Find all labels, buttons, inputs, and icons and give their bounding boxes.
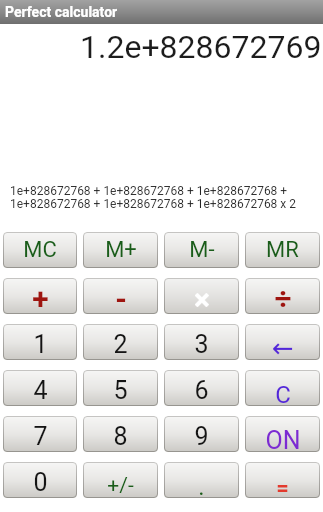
button[interactable]: 7	[3, 416, 77, 452]
button[interactable]: ÷	[245, 278, 320, 314]
button[interactable]: 0	[3, 462, 77, 498]
staticText: C	[275, 381, 291, 406]
button[interactable]: ×	[164, 278, 239, 314]
button[interactable]: +/-	[83, 462, 158, 498]
button[interactable]: ON	[245, 416, 320, 452]
button[interactable]: M+	[83, 232, 158, 268]
button[interactable]: 3	[164, 324, 239, 360]
staticText: -	[115, 281, 127, 314]
button[interactable]: =	[245, 462, 320, 498]
staticText: ←	[272, 333, 294, 360]
staticText: 8	[113, 422, 128, 451]
button[interactable]: M-	[164, 232, 239, 268]
staticText: 2	[113, 330, 128, 359]
staticText: 4	[33, 376, 48, 405]
button[interactable]: ←	[245, 324, 320, 360]
staticText: M+	[105, 237, 137, 263]
staticText: MR	[266, 237, 299, 263]
staticText: ×	[194, 282, 210, 314]
staticText: MC	[23, 237, 57, 263]
button[interactable]: .	[164, 462, 239, 498]
staticText: M-	[189, 237, 215, 263]
staticText: +/-	[107, 473, 134, 498]
button[interactable]: MR	[245, 232, 320, 268]
staticText: ON	[265, 426, 301, 452]
button[interactable]: 9	[164, 416, 239, 452]
staticText: Perfect calculator	[5, 4, 118, 20]
staticText: .	[198, 473, 205, 498]
staticText: ÷	[274, 281, 292, 314]
staticText: 7	[33, 422, 48, 451]
staticText: 1.2e+828672769	[80, 28, 322, 66]
button[interactable]: C	[245, 370, 320, 406]
button[interactable]: 5	[83, 370, 158, 406]
staticText: 6	[194, 376, 209, 405]
button[interactable]: MC	[3, 232, 77, 268]
button[interactable]: 4	[3, 370, 77, 406]
button[interactable]: 1	[3, 324, 77, 360]
staticText: +	[32, 281, 49, 314]
staticText: 1	[33, 330, 48, 359]
staticText: 3	[194, 330, 209, 359]
staticText: 9	[194, 422, 209, 451]
button[interactable]: -	[83, 278, 158, 314]
button[interactable]: 2	[83, 324, 158, 360]
staticText: 5	[113, 376, 128, 405]
staticText: =	[276, 475, 289, 498]
button[interactable]: 8	[83, 416, 158, 452]
button[interactable]: 6	[164, 370, 239, 406]
staticText: 0	[33, 468, 48, 497]
staticText: 1e+828672768 + 1e+828672768 + 1e+8286727…	[10, 184, 297, 210]
button[interactable]: +	[3, 278, 77, 314]
